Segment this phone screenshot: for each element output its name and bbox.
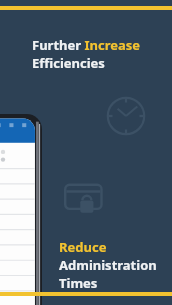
other: Secure payments xyxy=(64,182,108,220)
staticText: Times xyxy=(59,274,98,292)
staticText: Administration xyxy=(59,256,157,274)
other: Time saving xyxy=(106,96,146,136)
staticText: Reduce xyxy=(59,238,107,256)
button[interactable]: Further Increase xyxy=(32,36,141,72)
staticText: Efficiencies xyxy=(32,54,105,72)
staticText: Further Increase xyxy=(32,36,141,54)
button[interactable]: Reduce xyxy=(59,238,157,292)
